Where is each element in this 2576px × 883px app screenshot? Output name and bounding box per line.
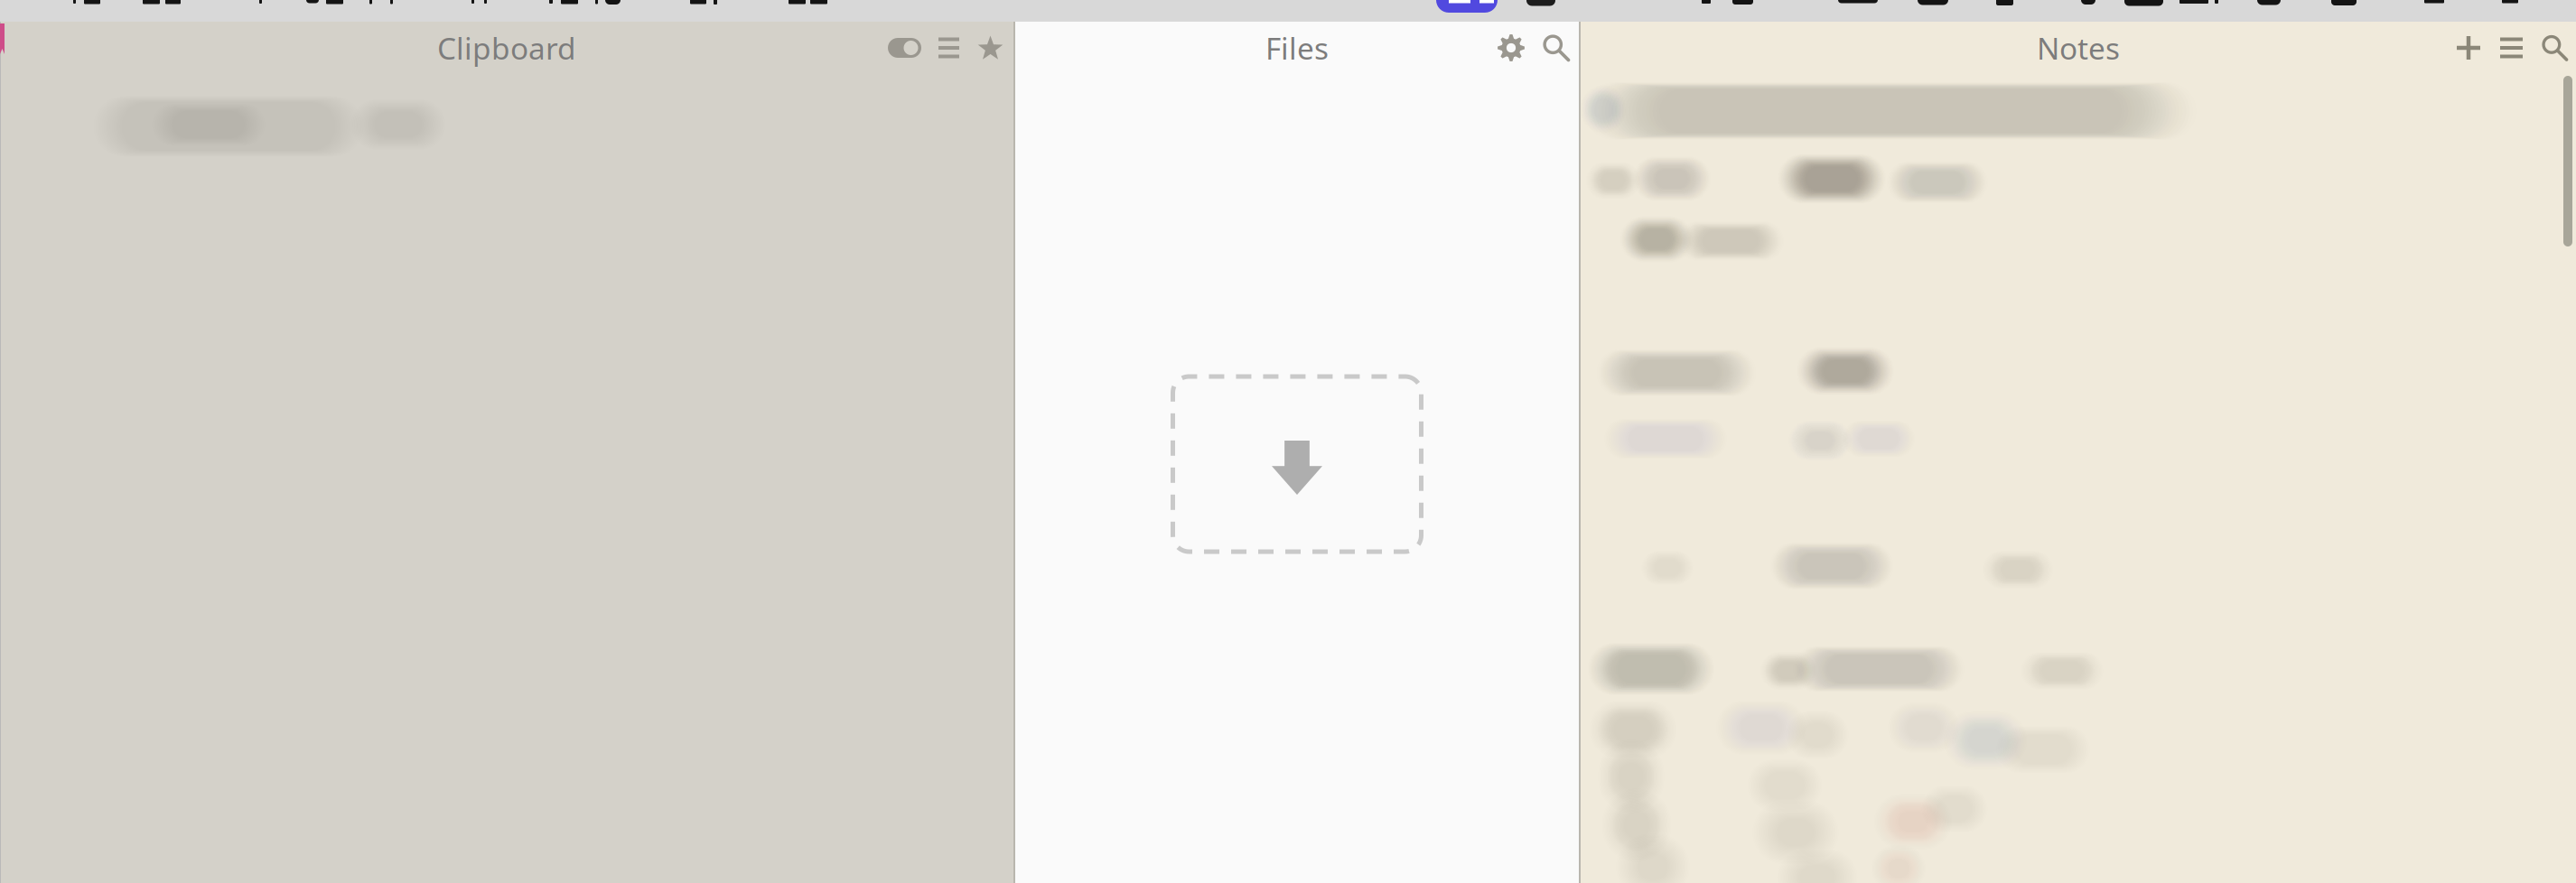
button[interactable]: Settings	[1488, 27, 1535, 69]
button[interactable]: Search notes	[2533, 28, 2568, 68]
button[interactable]: Clipboard sync	[881, 29, 929, 67]
staticText: Files	[1265, 28, 1329, 68]
button[interactable]: New note	[2447, 29, 2490, 67]
staticText: Clipboard	[437, 28, 576, 68]
staticText: Notes	[2037, 28, 2120, 68]
button[interactable]: Search files	[1535, 27, 1571, 69]
button[interactable]: Notes list options	[2490, 30, 2533, 65]
button[interactable]: Favorites	[969, 28, 1005, 68]
button[interactable]: Clipboard list options	[929, 30, 969, 65]
